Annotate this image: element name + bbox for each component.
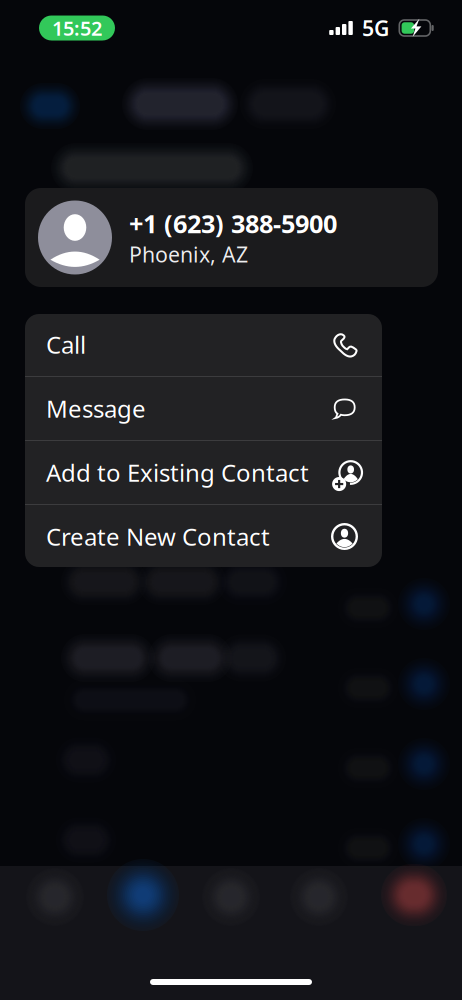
button[interactable]: Create New Contact — [25, 505, 382, 568]
staticText: +1 (623) 388-5900 — [129, 206, 337, 240]
staticText: Message — [46, 393, 146, 424]
staticText: 5G — [362, 14, 389, 42]
button[interactable]: Call — [25, 313, 382, 376]
button[interactable]: Message — [25, 377, 382, 440]
staticText: 15:52 — [52, 15, 102, 41]
button[interactable]: Add to Existing Contact — [25, 441, 382, 504]
staticText: Call — [46, 329, 86, 360]
staticText: Phoenix, AZ — [129, 240, 248, 268]
staticText: Create New Contact — [46, 521, 270, 552]
staticText: Add to Existing Contact — [46, 457, 309, 488]
